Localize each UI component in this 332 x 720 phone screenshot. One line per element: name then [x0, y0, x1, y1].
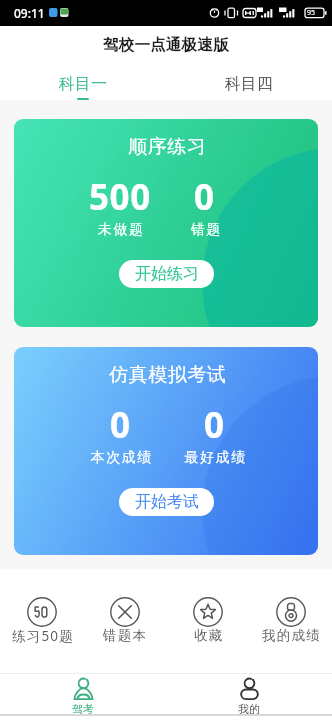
staticText: 科目四 [225, 74, 273, 94]
button[interactable]: 练习50题 [0, 586, 83, 645]
staticText: 驾考 [72, 702, 94, 716]
staticText: 09:11 [14, 5, 45, 21]
staticText: 0 [204, 401, 225, 449]
button[interactable]: 开始练习 [119, 260, 214, 288]
button[interactable]: 仿真模拟考试 [14, 347, 318, 555]
staticText: 0 [194, 173, 215, 221]
staticText: 我的成绩 [262, 627, 321, 644]
staticText: 我的 [238, 702, 260, 716]
button[interactable]: 科目四 [166, 60, 332, 100]
staticText: 开始练习 [135, 264, 199, 284]
staticText: 科目一 [59, 74, 107, 94]
staticText: 错题 [190, 221, 221, 239]
staticText: 顺序练习 [128, 135, 206, 159]
staticText: 未做题 [98, 221, 145, 239]
staticText: 收藏 [194, 627, 224, 644]
staticText: 最好成绩 [184, 449, 246, 467]
button[interactable]: 开始考试 [119, 488, 214, 516]
staticText: 仿真模拟考试 [109, 363, 226, 387]
staticText: 95 [307, 8, 316, 18]
staticText: 本次成绩 [90, 449, 152, 467]
staticText: 错题本 [103, 627, 148, 644]
staticText: 500 [89, 173, 151, 221]
staticText: 开始考试 [135, 492, 199, 512]
button[interactable]: 驾考 [0, 674, 166, 716]
button[interactable]: 我的成绩 [249, 586, 332, 644]
staticText: 驾校一点通极速版 [103, 35, 229, 55]
staticText: 0 [110, 401, 131, 449]
button[interactable]: 顺序练习 [14, 119, 318, 327]
button[interactable]: 收藏 [166, 586, 249, 644]
staticText: 练习50题 [12, 627, 74, 645]
button[interactable]: 科目一 [0, 60, 166, 100]
button[interactable]: 我的 [166, 674, 332, 716]
button[interactable]: 错题本 [83, 586, 166, 644]
